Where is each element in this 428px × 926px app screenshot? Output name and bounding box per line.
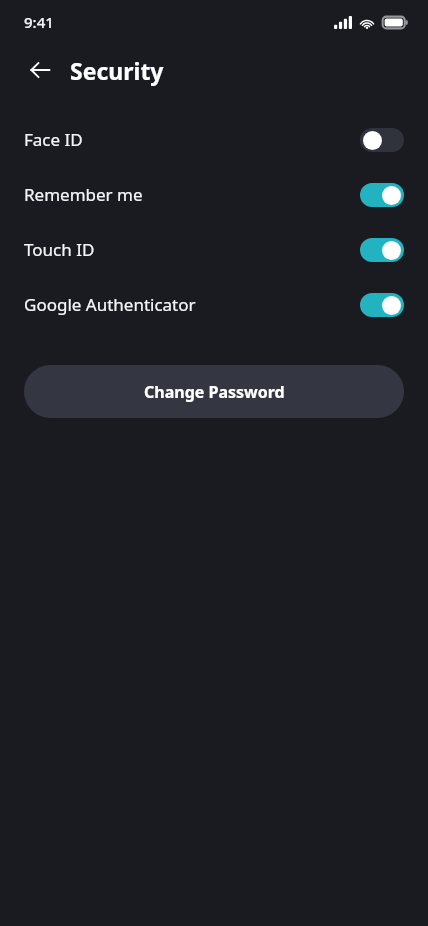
staticText: Security bbox=[70, 55, 164, 86]
button[interactable]: On bbox=[360, 238, 404, 262]
button[interactable]: Change Password bbox=[24, 365, 404, 418]
button[interactable]: Back bbox=[18, 48, 62, 92]
button[interactable]: On bbox=[360, 293, 404, 317]
button[interactable]: Face ID bbox=[0, 123, 428, 156]
button[interactable]: Google Authenticator bbox=[0, 288, 428, 321]
button[interactable]: Remember me bbox=[0, 178, 428, 211]
staticText: Google Authenticator bbox=[24, 293, 360, 316]
button[interactable]: Touch ID bbox=[0, 233, 428, 266]
staticText: 9:41 bbox=[24, 12, 54, 32]
staticText: Face ID bbox=[24, 128, 360, 151]
button[interactable]: On bbox=[360, 183, 404, 207]
staticText: Remember me bbox=[24, 183, 360, 206]
staticText: Touch ID bbox=[24, 238, 360, 261]
button[interactable]: Off bbox=[360, 128, 404, 152]
staticText: Change Password bbox=[144, 381, 285, 403]
